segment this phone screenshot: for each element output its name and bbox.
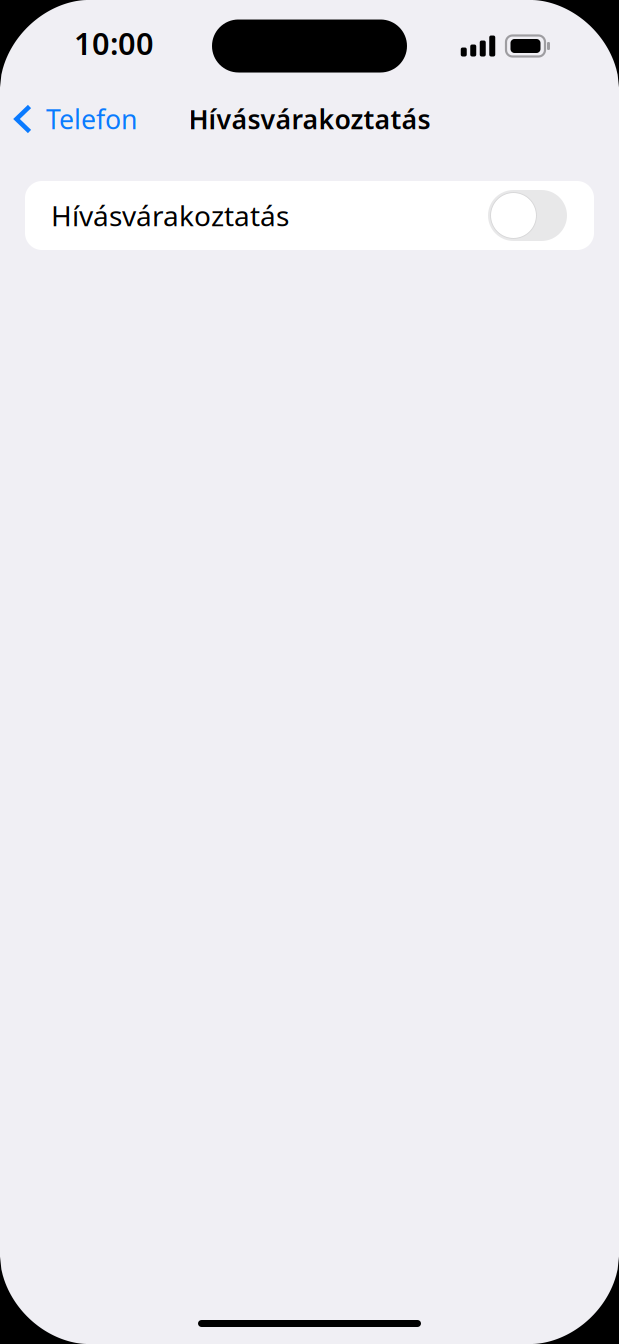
button[interactable]: Telefon (0, 92, 153, 146)
staticText: Hívásvárakoztatás (51, 197, 289, 234)
button[interactable]: Hívásvárakoztatás (25, 181, 594, 250)
staticText: 10:00 (74, 23, 154, 63)
staticText: Telefon (46, 101, 137, 137)
staticText: Hívásvárakoztatás (188, 101, 430, 137)
